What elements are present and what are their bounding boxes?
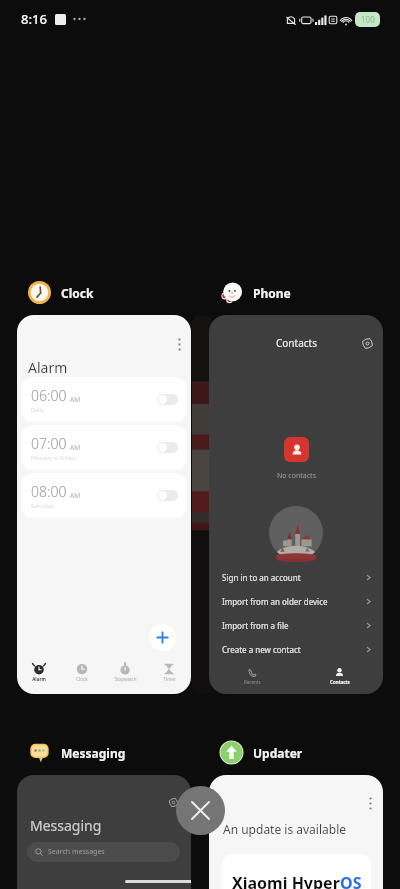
staticText: Clock — [61, 285, 94, 301]
button[interactable]: Updater — [220, 741, 303, 764]
staticText: 06:00 — [31, 386, 67, 405]
button[interactable]: Add alarm — [149, 624, 176, 651]
staticText: 07:00 — [31, 434, 67, 453]
staticText: Search messages — [48, 847, 105, 857]
button[interactable]: Search messages — [27, 842, 180, 862]
staticText: Alarm — [32, 676, 46, 682]
button[interactable]: Toggle alarm — [157, 394, 178, 405]
button[interactable]: Timer — [147, 658, 191, 686]
staticText: OS — [340, 872, 362, 889]
staticText: Create a new contact — [222, 644, 364, 655]
button[interactable]: More options — [167, 332, 191, 356]
staticText: Monday to Friday — [31, 454, 76, 461]
button[interactable]: 08:00 — [22, 473, 186, 518]
button[interactable]: Settings — [17, 775, 191, 889]
staticText: Updater — [253, 745, 303, 761]
staticText: Contacts — [276, 336, 317, 350]
staticText: Messaging — [61, 745, 126, 761]
button[interactable]: Settings — [357, 333, 377, 353]
button[interactable]: Clear all recent apps — [176, 786, 225, 835]
staticText: Phone — [253, 285, 291, 301]
button[interactable]: Contacts — [209, 315, 383, 694]
staticText: Messaging — [30, 816, 102, 835]
staticText: AM — [70, 443, 81, 452]
staticText: Recents — [244, 679, 261, 685]
staticText: 8:16 — [21, 10, 47, 28]
button[interactable]: Messaging — [28, 741, 126, 764]
button[interactable]: Stopwatch — [103, 658, 147, 686]
staticText: No contacts — [277, 471, 316, 481]
staticText: Import from an older device — [222, 596, 364, 607]
staticText: AM — [70, 395, 81, 404]
button[interactable]: 06:00 — [22, 377, 186, 422]
button[interactable]: More options — [359, 792, 381, 814]
staticText: 100 — [361, 14, 375, 25]
button[interactable]: Import from a file — [222, 613, 373, 637]
button[interactable]: Import from an older device — [222, 589, 373, 613]
button[interactable]: Sign in to an account — [222, 565, 373, 589]
button[interactable]: 07:00 — [22, 425, 186, 470]
staticText: Contacts — [330, 679, 350, 685]
staticText: 08:00 — [31, 482, 67, 501]
staticText: Stopwatch — [114, 676, 137, 682]
button[interactable]: Settings — [163, 792, 183, 812]
button[interactable]: Recents — [209, 662, 296, 690]
button[interactable]: Contacts — [296, 662, 383, 690]
staticText: Daily — [31, 406, 44, 413]
staticText: An update is available — [223, 821, 347, 837]
button[interactable]: Clock — [60, 658, 103, 686]
staticText: Clock — [76, 676, 88, 682]
staticText: Xiaomi Hyper — [232, 872, 340, 889]
staticText: Import from a file — [222, 620, 364, 631]
staticText: Alarm — [28, 358, 68, 377]
button[interactable]: Alarm — [17, 658, 60, 686]
button[interactable]: Create a new contact — [222, 637, 373, 661]
button[interactable]: Clock — [28, 281, 94, 304]
button[interactable]: Toggle alarm — [157, 442, 178, 453]
staticText: Timer — [163, 676, 176, 682]
button[interactable]: Toggle alarm — [157, 490, 178, 501]
staticText: AM — [70, 491, 81, 500]
staticText: Saturday — [31, 502, 54, 509]
staticText: Sign in to an account — [222, 572, 364, 583]
button[interactable]: More options — [17, 315, 191, 694]
button[interactable]: More options — [209, 775, 383, 889]
button[interactable]: Phone — [220, 281, 291, 304]
